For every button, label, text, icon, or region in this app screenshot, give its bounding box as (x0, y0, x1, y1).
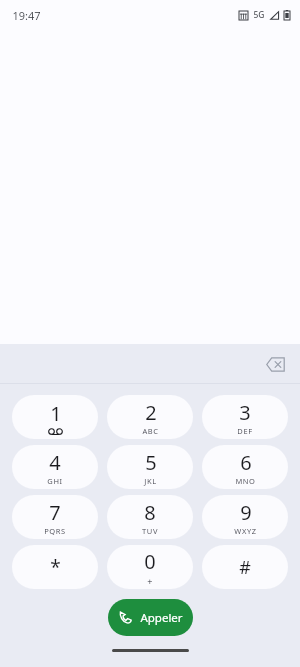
staticText: TUV (142, 526, 158, 536)
button[interactable]: * (12, 545, 98, 589)
button[interactable]: 0 (107, 545, 193, 589)
staticText: 7 (49, 499, 61, 526)
button[interactable]: # (202, 545, 288, 589)
button[interactable]: 8 (107, 495, 193, 539)
button[interactable]: 9 (202, 495, 288, 539)
staticText: Appeler (140, 610, 183, 626)
staticText: 5G (253, 9, 265, 21)
button[interactable]: Appeler (108, 599, 193, 636)
staticText: 2 (145, 399, 157, 426)
staticText: 5 (145, 449, 157, 476)
button[interactable]: 6 (202, 445, 288, 489)
button[interactable]: 4 (12, 445, 98, 489)
staticText: # (239, 555, 251, 580)
staticText: 3 (239, 399, 251, 426)
staticText: PQRS (44, 526, 66, 536)
staticText: JKL (144, 476, 157, 486)
staticText: 1 (50, 400, 62, 427)
button[interactable]: 5 (107, 445, 193, 489)
staticText: * (50, 554, 61, 580)
staticText: 0 (144, 548, 156, 575)
staticText: 9 (240, 499, 252, 526)
staticText: WXYZ (234, 526, 257, 536)
staticText: + (147, 575, 153, 587)
button[interactable]: 7 (12, 495, 98, 539)
button[interactable]: 2 (107, 395, 193, 439)
staticText: MNO (235, 476, 256, 486)
staticText: 4 (49, 449, 61, 476)
staticText: GHI (47, 476, 63, 486)
button[interactable]: Backspace (258, 347, 292, 381)
staticText: 19:47 (12, 8, 41, 23)
button[interactable]: 1 (12, 395, 98, 439)
staticText: ABC (142, 426, 159, 436)
staticText: 6 (240, 449, 252, 476)
button[interactable]: 3 (202, 395, 288, 439)
staticText: 8 (144, 499, 156, 526)
staticText: DEF (237, 426, 253, 436)
